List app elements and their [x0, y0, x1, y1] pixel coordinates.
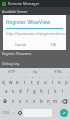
- button[interactable]: c: [24, 96, 31, 106]
- staticText: n: [47, 98, 50, 104]
- button[interactable]: 6: [35, 75, 42, 86]
- staticText: 3: [18, 76, 20, 79]
- staticText: c: [26, 98, 29, 104]
- staticText: j: [48, 88, 50, 94]
- staticText: .: [54, 109, 56, 115]
- staticText: 5: [32, 76, 34, 79]
- staticText: i: [52, 79, 54, 85]
- staticText: p: [65, 79, 68, 85]
- staticText: u: [44, 79, 47, 85]
- button[interactable]: 8: [49, 75, 56, 86]
- staticText: f: [27, 88, 29, 94]
- button[interactable]: ?123: [0, 106, 11, 120]
- staticText: y: [37, 79, 40, 85]
- button[interactable]: n: [45, 96, 52, 106]
- staticText: e: [16, 79, 19, 85]
- button[interactable]: b: [38, 96, 45, 106]
- button[interactable]: 3: [14, 75, 21, 86]
- button[interactable]: h: [38, 86, 45, 96]
- staticText: 9: [60, 76, 62, 79]
- staticText: Remote Manager: [8, 1, 40, 6]
- staticText: Register WiseView: [6, 18, 51, 25]
- staticText: 2: [11, 76, 13, 79]
- button[interactable]: Debug Log: [0, 58, 70, 68]
- staticText: h: [40, 88, 43, 94]
- staticText: z: [12, 98, 15, 104]
- button[interactable]: Register Pleaseme: [0, 48, 70, 58]
- button[interactable]: 2: [7, 75, 14, 86]
- staticText: Register Pleaseme: [2, 51, 32, 56]
- staticText: ?123: [2, 111, 9, 115]
- button[interactable]: s: [10, 86, 17, 96]
- staticText: 6: [39, 76, 41, 79]
- staticText: 1: [4, 76, 6, 79]
- button[interactable]: j: [45, 86, 52, 96]
- staticText: 8: [53, 76, 55, 79]
- staticText: t: [31, 79, 33, 85]
- staticText: m: [53, 98, 58, 104]
- staticText: OK: [51, 42, 57, 47]
- button[interactable]: z: [10, 96, 17, 106]
- button[interactable]: my: [24, 68, 47, 75]
- button[interactable]: k: [52, 86, 59, 96]
- button[interactable]: HTTP: [0, 68, 24, 75]
- staticText: r: [24, 79, 26, 85]
- staticText: Debug Log: [2, 61, 20, 66]
- button[interactable]: 5: [28, 75, 35, 86]
- button[interactable]: ,: [11, 106, 17, 120]
- staticText: 4: [25, 76, 27, 79]
- staticText: x: [19, 98, 22, 104]
- staticText: a: [5, 88, 8, 94]
- staticText: o: [58, 79, 61, 85]
- button[interactable]: v: [31, 96, 38, 106]
- button[interactable]: HTML: [47, 68, 70, 75]
- button[interactable]: 0: [63, 75, 70, 86]
- staticText: w: [9, 79, 13, 85]
- staticText: l: [62, 88, 64, 94]
- button[interactable]: 9: [56, 75, 63, 86]
- staticText: q: [2, 79, 5, 85]
- staticText: Available Server: [2, 9, 28, 14]
- staticText: ,: [13, 109, 15, 115]
- staticText: v: [33, 98, 36, 104]
- button[interactable]: g: [31, 86, 38, 96]
- button[interactable]: 4: [21, 75, 28, 86]
- button[interactable]: l: [59, 86, 66, 96]
- button[interactable]: a: [3, 86, 10, 96]
- staticText: http://ipcamera.chargerwireless.com: [6, 31, 66, 36]
- button[interactable]: f: [24, 86, 31, 96]
- staticText: Cancel: [15, 42, 27, 47]
- button[interactable]: .: [52, 106, 58, 120]
- button[interactable]: OK: [48, 41, 60, 48]
- staticText: s: [12, 88, 15, 94]
- staticText: 0: [67, 76, 69, 79]
- button[interactable]: Emoji: [17, 106, 23, 120]
- staticText: b: [40, 98, 43, 104]
- button[interactable]: Enter: [60, 109, 68, 117]
- button[interactable]: m: [52, 96, 59, 106]
- button[interactable]: Backspace: [59, 96, 70, 106]
- button[interactable]: 7: [42, 75, 49, 86]
- staticText: 7: [46, 76, 48, 79]
- button[interactable]: Shift: [0, 96, 10, 106]
- staticText: HTML: [54, 70, 63, 74]
- staticText: d: [19, 88, 22, 94]
- button[interactable]: d: [17, 86, 24, 96]
- button[interactable]: x: [17, 96, 24, 106]
- staticText: my: [33, 70, 38, 74]
- button[interactable]: 1: [0, 75, 7, 86]
- staticText: g: [33, 88, 36, 94]
- staticText: HTTP: [8, 70, 16, 74]
- button[interactable]: Cancel: [12, 41, 30, 48]
- staticText: k: [54, 88, 57, 94]
